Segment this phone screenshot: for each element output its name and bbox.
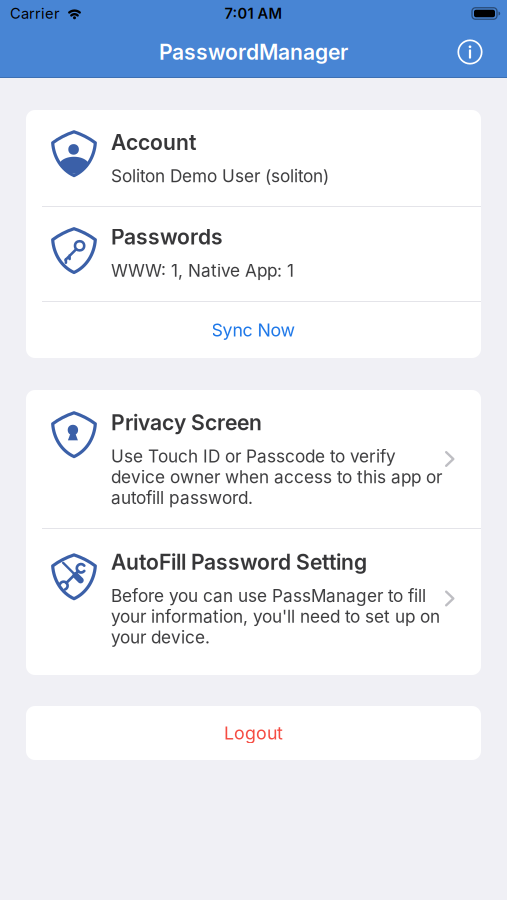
staticText: 7:01 AM [224,5,282,22]
staticText: PasswordManager [159,39,348,65]
staticText: Privacy Screen [111,410,262,435]
button[interactable]: Passwords [26,207,481,301]
staticText: Soliton Demo User (soliton) [111,166,329,186]
staticText: Carrier [10,5,60,22]
button[interactable]: AutoFill Password Setting [26,529,481,675]
button[interactable]: Info [457,39,483,65]
button[interactable]: Account [26,110,481,206]
staticText: AutoFill Password Setting [111,549,367,575]
staticText: Passwords [111,224,223,250]
button[interactable]: Sync Now [26,302,481,358]
button[interactable]: Privacy Screen [26,390,481,528]
staticText: Before you can use PassManager to fill y… [111,585,440,648]
button[interactable]: Logout [26,706,481,760]
staticText: Use Touch ID or Passcode to verify devic… [111,446,442,508]
staticText: WWW: 1, Native App: 1 [111,260,294,281]
staticText: Sync Now [211,319,295,341]
staticText: Account [111,130,196,155]
staticText: Logout [224,722,283,744]
